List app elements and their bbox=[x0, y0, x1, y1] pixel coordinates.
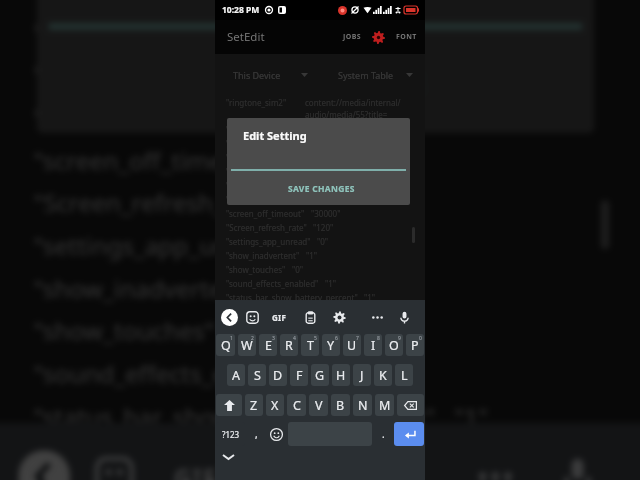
button[interactable]: P bbox=[406, 334, 424, 356]
button[interactable]: SAVE CHANGES bbox=[227, 171, 410, 205]
staticText: L bbox=[401, 367, 408, 384]
button[interactable]: "show_inadvertent" bbox=[0, 270, 640, 313]
button[interactable]: "ringtone_vibration" bbox=[215, 124, 425, 138]
button[interactable]: Enter bbox=[394, 422, 424, 446]
button[interactable]: "status_bar_show_battery_percent" bbox=[0, 398, 640, 441]
button[interactable]: sticker bbox=[244, 309, 260, 325]
button[interactable]: Emoji bbox=[267, 422, 285, 446]
button[interactable]: Backspace bbox=[397, 394, 424, 416]
button[interactable]: "screen_brightness" bbox=[0, 14, 640, 57]
button[interactable]: mic bbox=[396, 309, 412, 325]
button[interactable]: "settings_app_unread" bbox=[0, 228, 640, 270]
button[interactable]: clip bbox=[302, 309, 318, 325]
button[interactable]: N bbox=[353, 394, 372, 416]
button[interactable]: O bbox=[385, 334, 403, 356]
button[interactable]: gif bbox=[171, 450, 219, 480]
button[interactable]: Q bbox=[216, 334, 235, 356]
button[interactable]: FONT bbox=[391, 25, 422, 49]
button[interactable]: Period bbox=[375, 422, 391, 446]
button[interactable]: "screen_button_light" bbox=[0, 100, 640, 142]
button[interactable]: sticker bbox=[88, 450, 137, 480]
button[interactable]: "show_touches" bbox=[0, 313, 640, 356]
staticText: S bbox=[254, 367, 261, 384]
button[interactable]: "sound_effects_enabled" bbox=[0, 356, 640, 398]
staticText: "30000" bbox=[311, 208, 341, 219]
button[interactable]: C bbox=[287, 394, 306, 416]
button[interactable]: L bbox=[395, 364, 413, 386]
button[interactable]: E bbox=[259, 334, 277, 356]
button[interactable]: "Screen_refresh_rate" bbox=[0, 185, 640, 228]
button[interactable]: Back bbox=[221, 309, 238, 326]
button[interactable]: V bbox=[309, 394, 328, 416]
button[interactable]: B bbox=[331, 394, 350, 416]
button[interactable]: "show_touches" bbox=[215, 264, 425, 278]
button[interactable]: "screen_off_timeout" bbox=[215, 208, 425, 222]
button[interactable]: This Device bbox=[215, 54, 320, 96]
button[interactable]: SAVE CHANGES bbox=[37, 30, 594, 133]
button[interactable]: "screen_brightness_mode" bbox=[215, 180, 425, 194]
button[interactable]: Shift bbox=[216, 394, 242, 416]
button[interactable]: K bbox=[374, 364, 392, 386]
button[interactable]: R bbox=[280, 334, 298, 356]
button[interactable]: D bbox=[269, 364, 287, 386]
button[interactable]: "screen_off_timeout" bbox=[0, 142, 640, 185]
button[interactable]: M bbox=[375, 394, 394, 416]
button[interactable]: T bbox=[301, 334, 319, 356]
staticText: content://media/internal/audio/media/55?… bbox=[305, 97, 413, 120]
button[interactable]: dots bbox=[469, 450, 518, 480]
staticText: "1" bbox=[335, 356, 372, 389]
staticText: Y bbox=[327, 337, 335, 354]
button[interactable]: S bbox=[248, 364, 266, 386]
button[interactable]: H bbox=[332, 364, 350, 386]
button[interactable]: X bbox=[266, 394, 284, 416]
button[interactable]: Settings bbox=[372, 31, 385, 44]
staticText: "0" bbox=[235, 313, 271, 346]
staticText: "rotation_lock" bbox=[226, 138, 281, 149]
button[interactable]: "settings_app_unread" bbox=[215, 236, 425, 250]
button[interactable]: gif bbox=[271, 309, 287, 325]
button[interactable]: "screen_auto_brightness" bbox=[215, 152, 425, 166]
button[interactable]: "Screen_refresh_rate" bbox=[215, 222, 425, 236]
button[interactable]: System Table bbox=[320, 54, 425, 96]
staticText: This Device bbox=[233, 69, 281, 81]
button[interactable]: mic bbox=[552, 450, 600, 480]
button[interactable]: "screen_auto_brightness" bbox=[0, 0, 640, 14]
button[interactable]: "status_bar_show_battery_percent" bbox=[215, 292, 425, 306]
button[interactable]: W bbox=[238, 334, 256, 356]
button[interactable]: J bbox=[353, 364, 371, 386]
button[interactable]: A bbox=[227, 364, 245, 386]
staticText: Q bbox=[221, 337, 231, 354]
staticText: "102" bbox=[307, 166, 328, 177]
button[interactable]: U bbox=[343, 334, 361, 356]
button[interactable]: Z bbox=[245, 394, 263, 416]
button[interactable]: Comma bbox=[248, 422, 264, 446]
button[interactable]: F bbox=[290, 364, 308, 386]
button[interactable]: "rotation_lock" bbox=[215, 138, 425, 152]
staticText: Edit Setting bbox=[243, 128, 307, 143]
staticText: 10:28 PM bbox=[222, 4, 260, 16]
button[interactable]: "screen_brightness" bbox=[215, 166, 425, 180]
staticText: M bbox=[379, 397, 391, 414]
button[interactable]: JOBS bbox=[338, 25, 366, 49]
staticText: "screen_brightness" bbox=[226, 166, 301, 177]
button[interactable]: ?123 bbox=[216, 422, 245, 446]
staticText: "1" bbox=[277, 270, 314, 304]
button[interactable]: Y bbox=[322, 334, 340, 356]
button[interactable]: "sound_effects_enabled" bbox=[215, 278, 425, 292]
button[interactable]: I bbox=[364, 334, 382, 356]
button[interactable]: gear bbox=[331, 309, 347, 325]
staticText: "screen_off_timeout" bbox=[33, 142, 274, 176]
button[interactable]: "screen_button_light" bbox=[215, 194, 425, 208]
button[interactable]: "screen_brightness_mode" bbox=[0, 57, 640, 100]
button[interactable]: "ringtone_sim2" bbox=[215, 97, 425, 124]
staticText: R bbox=[285, 337, 293, 354]
button[interactable]: "show_inadvertent" bbox=[215, 250, 425, 264]
staticText: J bbox=[360, 367, 364, 384]
button[interactable]: dots bbox=[369, 309, 385, 325]
button[interactable]: G bbox=[311, 364, 329, 386]
button[interactable]: Back bbox=[18, 450, 70, 480]
